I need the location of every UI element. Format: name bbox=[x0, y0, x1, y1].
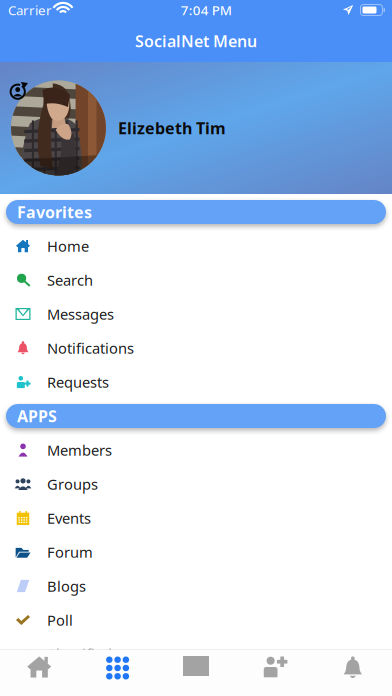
staticText: Requests bbox=[47, 372, 109, 392]
button[interactable]: Requests bbox=[0, 365, 392, 399]
button[interactable]: Forum bbox=[0, 535, 392, 569]
button[interactable]: Notifications bbox=[314, 650, 392, 696]
button[interactable]: Home bbox=[0, 229, 392, 263]
button[interactable]: Notifications bbox=[0, 331, 392, 365]
staticText: Carrier bbox=[8, 1, 52, 19]
staticText: Blogs bbox=[47, 576, 86, 596]
staticText: Classifieds bbox=[47, 644, 119, 664]
staticText: Favorites bbox=[17, 201, 92, 223]
staticText: Search bbox=[47, 270, 93, 290]
staticText: SocialNet Menu bbox=[135, 30, 257, 52]
staticText: Forum bbox=[47, 542, 93, 562]
button[interactable]: Search bbox=[0, 263, 392, 297]
staticText: Groups bbox=[47, 474, 98, 494]
button[interactable]: Home bbox=[0, 650, 78, 696]
staticText: Notifications bbox=[47, 338, 134, 358]
staticText: Messages bbox=[47, 304, 114, 324]
staticText: Poll bbox=[47, 610, 73, 630]
button[interactable]: Messages bbox=[0, 297, 392, 331]
button[interactable]: Apps bbox=[78, 650, 157, 696]
button[interactable]: Switch user bbox=[0, 62, 28, 100]
staticText: Home bbox=[47, 236, 89, 256]
button[interactable]: Events bbox=[0, 501, 392, 535]
staticText: Elizebeth Tim bbox=[118, 117, 226, 139]
staticText: APPS bbox=[17, 405, 57, 427]
button[interactable]: Poll bbox=[0, 603, 392, 637]
staticText: Members bbox=[47, 440, 112, 460]
button[interactable]: Groups bbox=[0, 467, 392, 501]
staticText: 7:04 PM bbox=[181, 1, 232, 19]
button[interactable]: Members bbox=[0, 433, 392, 467]
staticText: Events bbox=[47, 508, 91, 528]
button[interactable]: Requests bbox=[235, 650, 314, 696]
button[interactable]: Blogs bbox=[0, 569, 392, 603]
button[interactable]: Classifieds bbox=[0, 637, 392, 671]
button[interactable]: Messages bbox=[157, 650, 235, 696]
